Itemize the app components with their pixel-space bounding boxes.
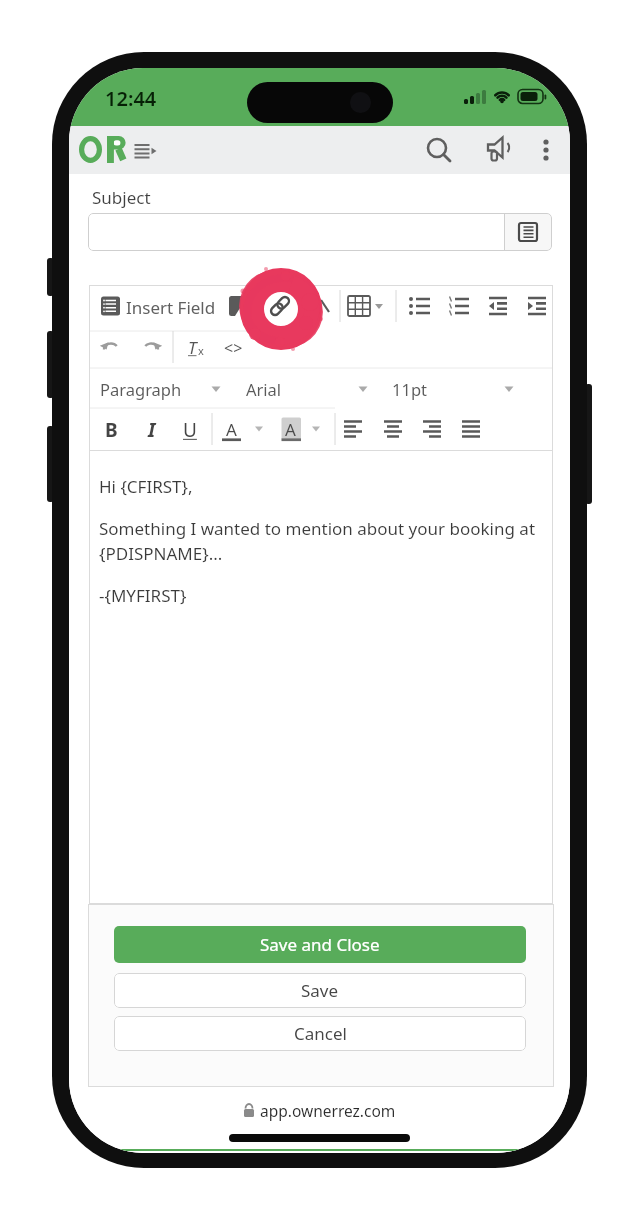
staticText: I (148, 417, 156, 443)
staticText: Insert Field (126, 296, 216, 319)
staticText: A (285, 418, 296, 441)
staticText: app.ownerrez.com (260, 1100, 396, 1121)
staticText: Subject (92, 186, 151, 209)
staticText: Save and Close (260, 933, 380, 956)
button[interactable]: Insert Field (89, 285, 553, 451)
staticText: T (188, 336, 197, 359)
staticText: B (105, 417, 118, 443)
staticText: Something I wanted to mention about your… (99, 517, 536, 540)
staticText: x (198, 343, 204, 358)
staticText: -{MYFIRST} (99, 584, 187, 607)
staticText: Paragraph (100, 378, 182, 400)
staticText: U (183, 417, 197, 443)
staticText: Hi {CFIRST}, (99, 475, 193, 498)
staticText: <> (224, 337, 243, 359)
button[interactable]: Cancel (114, 1016, 526, 1051)
staticText: 12:44 (105, 85, 157, 112)
staticText: 11pt (392, 378, 427, 400)
button[interactable]: Save and Close (114, 926, 526, 963)
button[interactable] (478, 130, 518, 170)
button[interactable] (526, 130, 566, 170)
button[interactable] (504, 213, 552, 251)
button[interactable]: Save (114, 973, 526, 1008)
staticText: Save (301, 979, 339, 1002)
staticText: {PDISPNAME}... (99, 542, 223, 565)
button[interactable] (418, 130, 458, 170)
staticText: A (226, 418, 237, 441)
staticText: Cancel (294, 1022, 347, 1045)
staticText: Arial (246, 378, 282, 400)
